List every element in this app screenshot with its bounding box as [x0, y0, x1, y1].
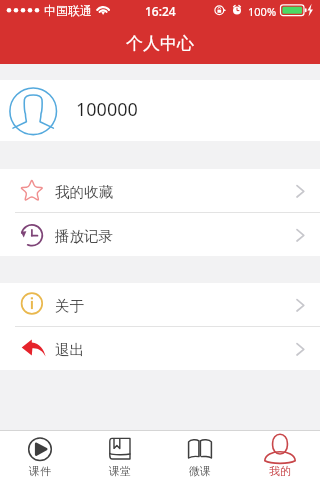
button[interactable]: 我的: [240, 431, 320, 480]
button[interactable]: 退出: [0, 327, 320, 370]
staticText: 16:24: [145, 3, 176, 19]
staticText: 我的收藏: [55, 183, 113, 201]
staticText: 中国联通: [44, 3, 92, 18]
button[interactable]: 课件: [0, 431, 80, 480]
staticText: 微课: [189, 464, 211, 478]
staticText: 退出: [55, 341, 84, 359]
staticText: 100%: [248, 4, 277, 19]
button[interactable]: 播放记录: [0, 213, 320, 256]
staticText: 课堂: [109, 464, 131, 478]
staticText: 我的: [269, 464, 291, 478]
button[interactable]: 我的收藏: [0, 169, 320, 212]
staticText: 课件: [29, 464, 51, 478]
staticText: 100000: [76, 97, 138, 122]
button[interactable]: 100000: [0, 80, 320, 141]
button[interactable]: 微课: [160, 431, 240, 480]
button[interactable]: 课堂: [80, 431, 160, 480]
button[interactable]: 关于: [0, 283, 320, 326]
staticText: 关于: [55, 297, 84, 315]
staticText: 个人中心: [126, 33, 194, 54]
staticText: 播放记录: [55, 227, 113, 245]
